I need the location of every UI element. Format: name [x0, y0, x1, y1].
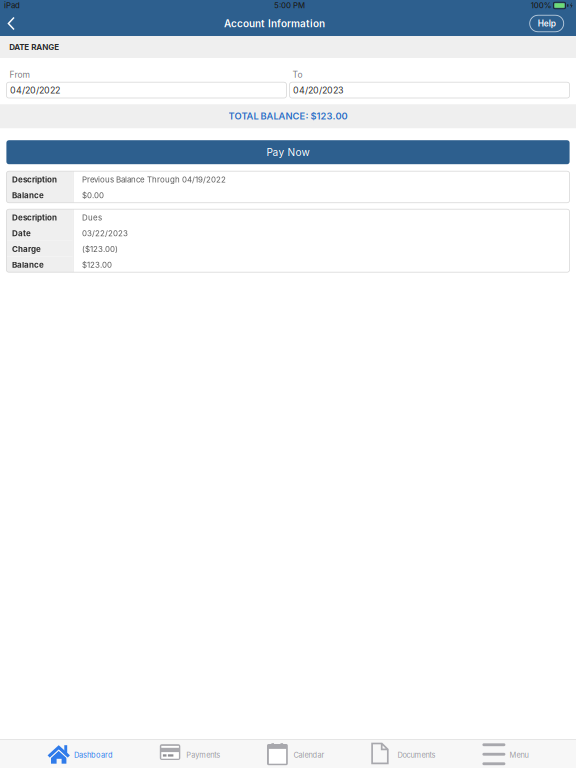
staticText: Description — [12, 213, 57, 222]
staticText: 04/20/2022 — [10, 85, 60, 95]
staticText: Date — [12, 228, 31, 238]
button[interactable]: Documents — [371, 740, 436, 768]
staticText: Payments — [186, 750, 220, 759]
staticText: 5:00 PM — [274, 1, 305, 10]
staticText: Help — [538, 18, 556, 29]
staticText: Account Information — [224, 17, 325, 30]
button[interactable]: Back — [0, 11, 34, 36]
staticText: 03/22/2023 — [82, 229, 128, 238]
staticText: Previous Balance Through 04/19/2022 — [82, 175, 226, 184]
staticText: TOTAL BALANCE: $123.00 — [228, 111, 347, 122]
button[interactable]: Payments — [160, 740, 220, 768]
staticText: iPad — [4, 1, 20, 10]
staticText: 100% — [531, 1, 552, 10]
staticText: Menu — [509, 750, 528, 759]
staticText: ($123.00) — [82, 244, 118, 254]
button[interactable]: Dashboard — [48, 740, 113, 768]
staticText: DATE RANGE — [9, 42, 59, 52]
staticText: Calendar — [293, 750, 324, 759]
button[interactable]: Calendar — [267, 740, 324, 768]
staticText: Documents — [398, 750, 436, 759]
staticText: 04/20/2023 — [293, 85, 344, 95]
staticText: Dues — [82, 213, 102, 222]
button[interactable]: Pay Now — [6, 140, 570, 164]
staticText: Balance — [12, 260, 44, 270]
staticText: $123.00 — [82, 260, 112, 270]
button[interactable]: Menu — [482, 740, 528, 768]
staticText: Description — [12, 175, 57, 184]
staticText: Balance — [12, 190, 44, 200]
staticText: Pay Now — [266, 146, 309, 158]
button[interactable]: Help — [530, 15, 564, 32]
staticText: Charge — [12, 244, 41, 254]
staticText: $0.00 — [82, 191, 104, 200]
staticText: Dashboard — [74, 750, 113, 759]
staticText: To — [292, 69, 302, 80]
staticText: From — [9, 69, 29, 80]
